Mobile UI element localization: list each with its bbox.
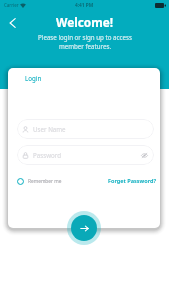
button[interactable]: Password [17,145,154,165]
button[interactable]: Forget Password? [108,176,157,186]
staticText: 4:41 PM [75,2,94,9]
staticText: Remember me [28,178,62,185]
button[interactable]: Continue [71,215,97,241]
staticText: User Name [33,125,66,133]
button[interactable]: Back [2,13,22,33]
button[interactable]: User Name [17,119,154,139]
staticText: Password [33,151,61,159]
button[interactable]: Remember me [17,177,62,186]
staticText: Carrier [4,2,19,8]
staticText: Please login or sign up to access member… [38,33,132,51]
staticText: Welcome! [56,14,114,30]
staticText: Login [25,74,42,82]
